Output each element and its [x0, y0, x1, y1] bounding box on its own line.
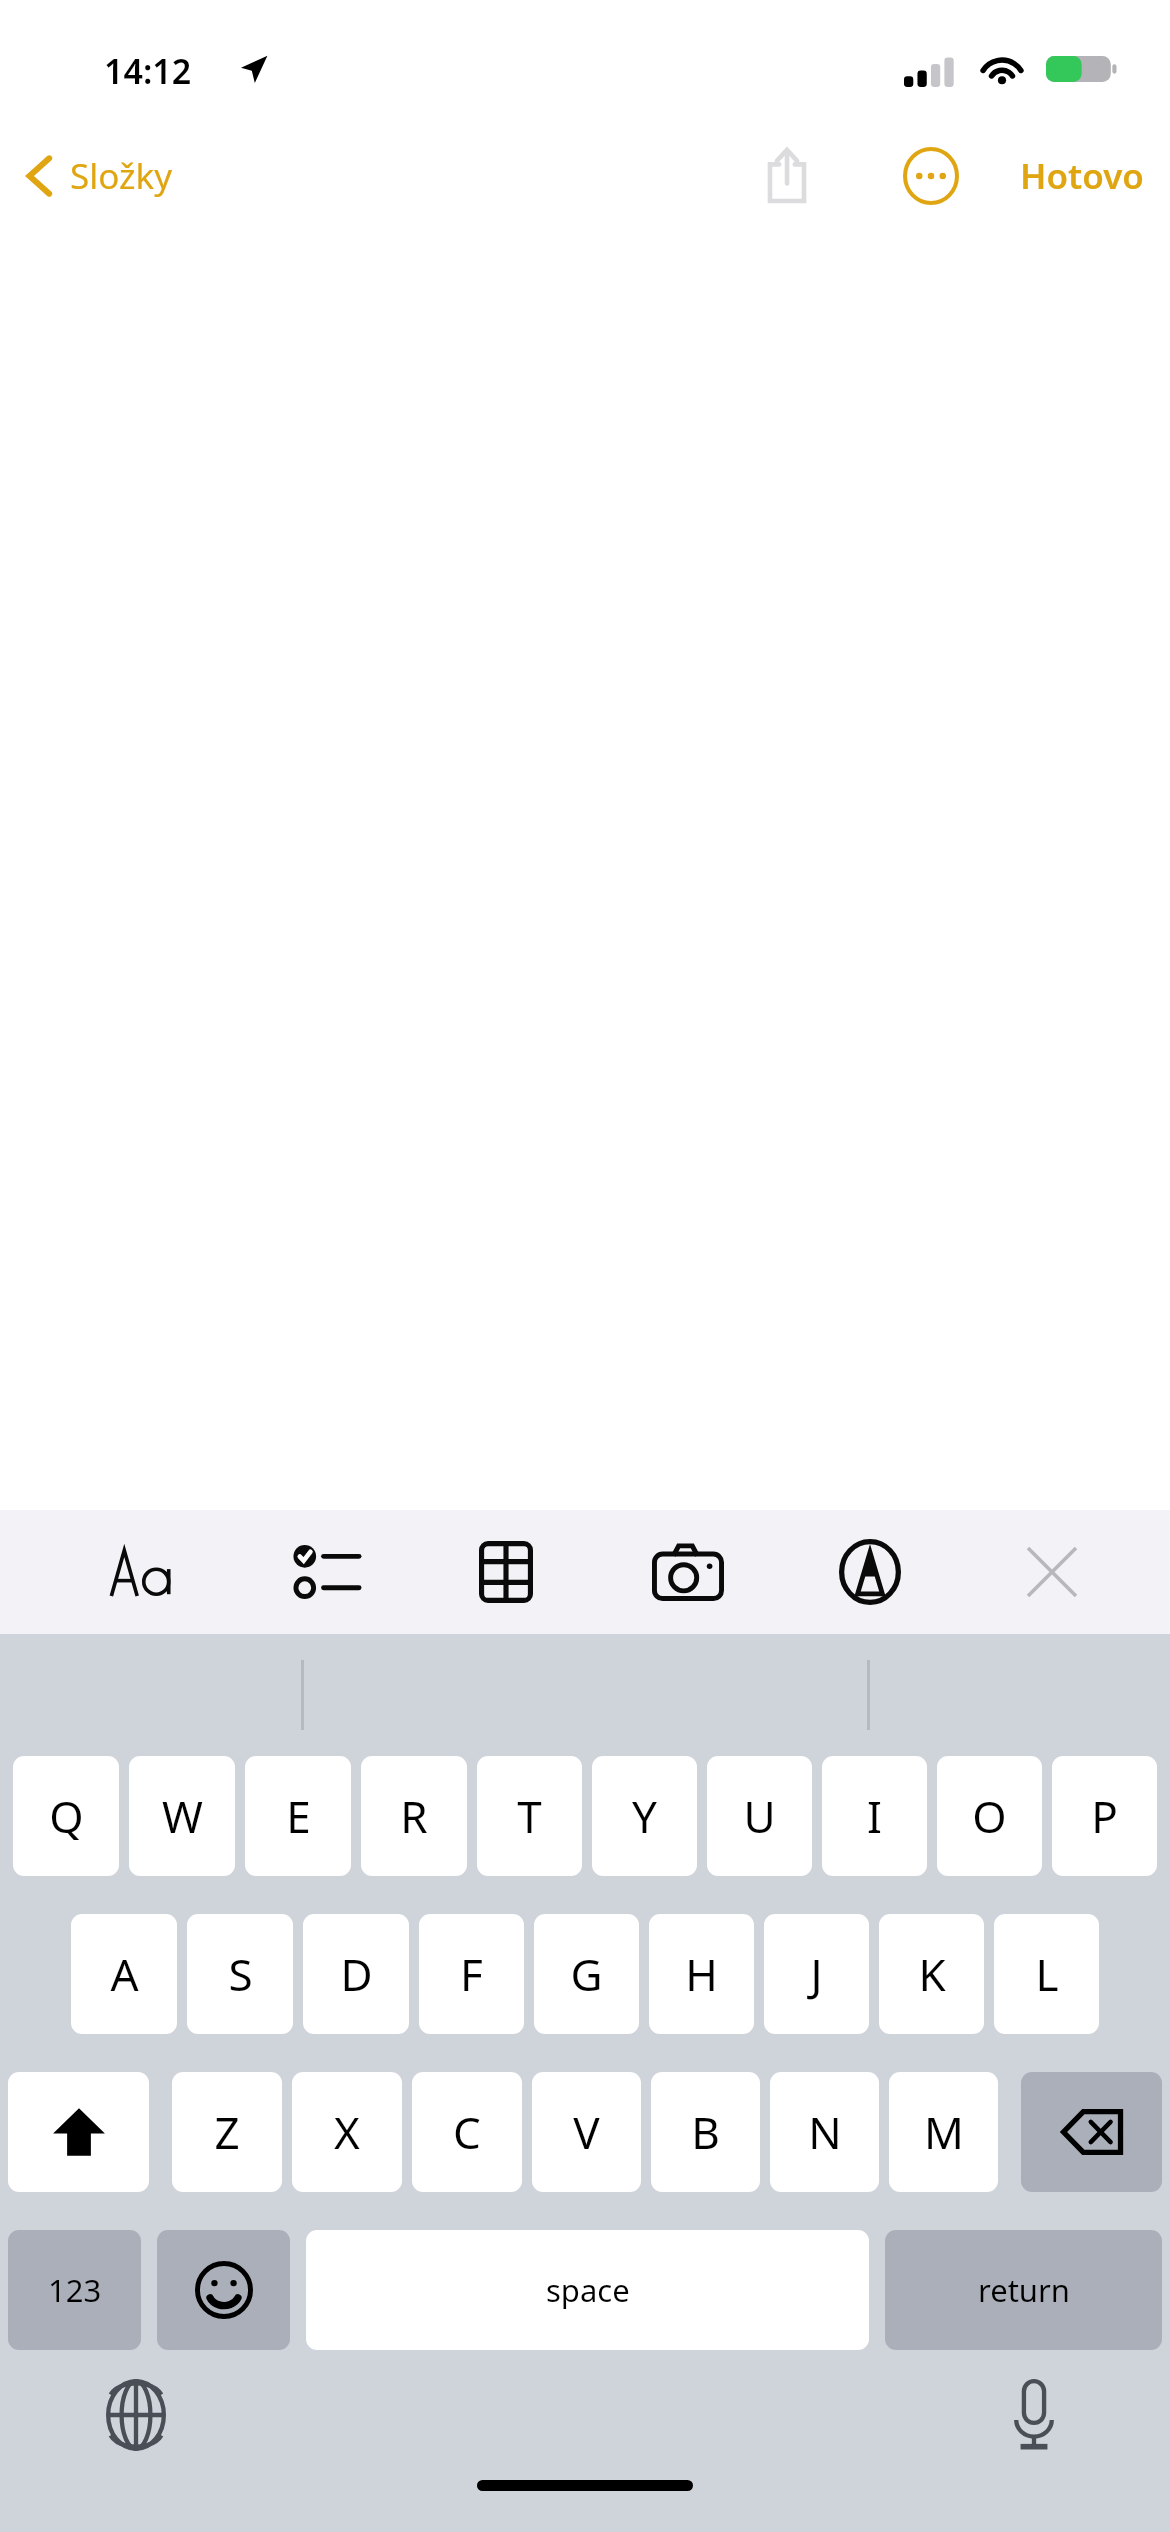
button[interactable]: Z	[172, 2072, 282, 2192]
button[interactable]: U	[707, 1756, 812, 1876]
button[interactable]: G	[534, 1914, 639, 2034]
staticText: V	[573, 2102, 600, 2162]
staticText: return	[978, 2269, 1070, 2311]
button[interactable]: S	[187, 1914, 293, 2034]
button[interactable]: N	[770, 2072, 879, 2192]
button[interactable]: D	[303, 1914, 409, 2034]
staticText: C	[453, 2102, 481, 2162]
staticText: U	[743, 1786, 776, 1846]
button[interactable]: Hotovo	[1016, 142, 1148, 210]
staticText: X	[334, 2102, 360, 2162]
staticText: 14:12	[104, 48, 192, 94]
staticText: Y	[632, 1786, 657, 1846]
button[interactable]: Text format	[96, 1517, 192, 1627]
staticText: K	[918, 1944, 946, 2004]
staticText: Složky	[70, 152, 173, 200]
staticText: F	[460, 1944, 483, 2004]
button[interactable]: L	[994, 1914, 1099, 2034]
staticText: L	[1035, 1944, 1059, 2004]
button[interactable]: M	[889, 2072, 998, 2192]
button[interactable]: A	[71, 1914, 177, 2034]
button[interactable]: X	[292, 2072, 402, 2192]
button[interactable]: J	[764, 1914, 869, 2034]
button[interactable]: E	[245, 1756, 351, 1876]
button[interactable]: H	[649, 1914, 754, 2034]
staticText: I	[867, 1786, 882, 1846]
staticText: Hotovo	[1020, 152, 1144, 200]
button[interactable]: Dictation	[986, 2367, 1082, 2463]
button[interactable]: 123	[8, 2230, 141, 2350]
button[interactable]: More options	[892, 137, 970, 215]
staticText: P	[1091, 1786, 1118, 1846]
button[interactable]: V	[532, 2072, 641, 2192]
staticText: E	[286, 1786, 311, 1846]
button[interactable]: T	[477, 1756, 582, 1876]
button[interactable]: Q	[13, 1756, 119, 1876]
button[interactable]: Emoji	[157, 2230, 290, 2350]
staticText: R	[400, 1786, 428, 1846]
button[interactable]: Change keyboard	[88, 2367, 184, 2463]
button[interactable]: Share	[748, 137, 826, 215]
staticText: D	[340, 1944, 373, 2004]
button[interactable]: F	[419, 1914, 524, 2034]
button[interactable]: W	[129, 1756, 235, 1876]
staticText: A	[110, 1944, 139, 2004]
button[interactable]: Table	[458, 1517, 554, 1627]
button[interactable]: I	[822, 1756, 927, 1876]
staticText: Q	[49, 1786, 84, 1846]
button[interactable]: C	[412, 2072, 522, 2192]
staticText: S	[228, 1944, 253, 2004]
staticText: N	[808, 2102, 842, 2162]
staticText: T	[517, 1786, 542, 1846]
staticText: G	[570, 1944, 603, 2004]
staticText: 123	[48, 2269, 102, 2311]
button[interactable]: return	[885, 2230, 1162, 2350]
button[interactable]: Camera	[640, 1517, 736, 1627]
staticText: J	[810, 1944, 823, 2004]
button[interactable]: B	[651, 2072, 760, 2192]
button[interactable]: space	[306, 2230, 869, 2350]
staticText: space	[546, 2269, 630, 2311]
button[interactable]: Backspace	[1021, 2072, 1162, 2192]
staticText: M	[924, 2102, 964, 2162]
staticText: W	[162, 1786, 203, 1846]
button[interactable]: Y	[592, 1756, 697, 1876]
button[interactable]: Markup	[822, 1517, 918, 1627]
button[interactable]: P	[1052, 1756, 1157, 1876]
staticText: O	[972, 1786, 1007, 1846]
button[interactable]: Shift	[8, 2072, 149, 2192]
button[interactable]: Složky	[22, 150, 173, 202]
button[interactable]: Checklist	[277, 1517, 373, 1627]
staticText: H	[685, 1944, 718, 2004]
button[interactable]: O	[937, 1756, 1042, 1876]
staticText: B	[691, 2102, 720, 2162]
button[interactable]: R	[361, 1756, 467, 1876]
button[interactable]: Close keyboard	[1004, 1517, 1100, 1627]
button[interactable]: K	[879, 1914, 984, 2034]
staticText: Z	[214, 2102, 240, 2162]
